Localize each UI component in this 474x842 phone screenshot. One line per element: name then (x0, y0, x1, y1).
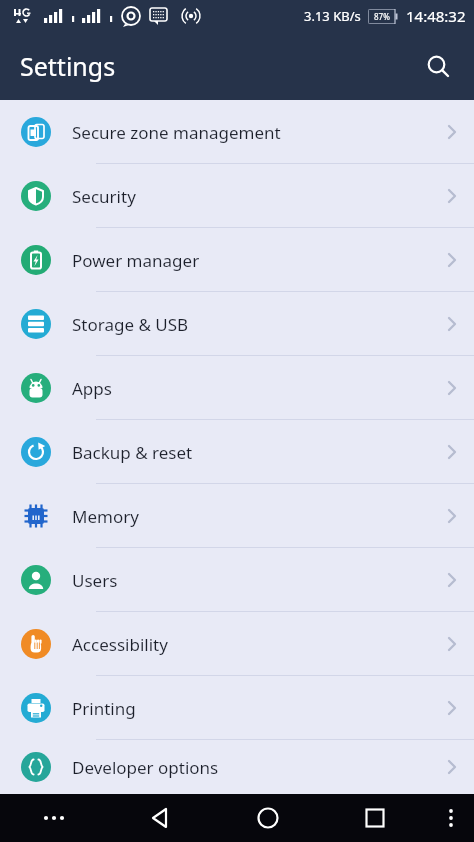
staticText: Developer options (72, 756, 430, 779)
staticText: 3.13 KB/s (304, 7, 361, 25)
staticText: Secure zone management (72, 121, 430, 144)
staticText: Security (72, 185, 430, 208)
button[interactable]: Accessibility (0, 612, 474, 676)
staticText: Storage & USB (72, 313, 430, 336)
button[interactable]: Storage & USB (0, 292, 474, 356)
button[interactable]: Search (416, 44, 460, 88)
button[interactable]: Back (107, 794, 214, 842)
button[interactable]: Backup & reset (0, 420, 474, 484)
button[interactable]: Apps (0, 356, 474, 420)
staticText: Accessibility (72, 633, 430, 656)
button[interactable]: Printing (0, 676, 474, 740)
staticText: Printing (72, 697, 430, 720)
staticText: Settings (20, 49, 116, 83)
button[interactable]: Developer options (0, 740, 474, 794)
button[interactable]: Memory (0, 484, 474, 548)
button[interactable]: More options (428, 794, 474, 842)
button[interactable]: Security (0, 164, 474, 228)
staticText: Users (72, 569, 430, 592)
button[interactable]: Users (0, 548, 474, 612)
button[interactable]: Power manager (0, 228, 474, 292)
staticText: 14:48:32 (406, 6, 466, 26)
staticText: Power manager (72, 249, 430, 272)
staticText: Apps (72, 377, 430, 400)
staticText: Memory (72, 505, 430, 528)
staticText: Backup & reset (72, 441, 430, 464)
staticText: 87% (374, 11, 390, 22)
button[interactable]: Home (214, 794, 321, 842)
button[interactable]: Recent apps menu (0, 794, 107, 842)
button[interactable]: Secure zone management (0, 100, 474, 164)
button[interactable]: Recents (321, 794, 428, 842)
